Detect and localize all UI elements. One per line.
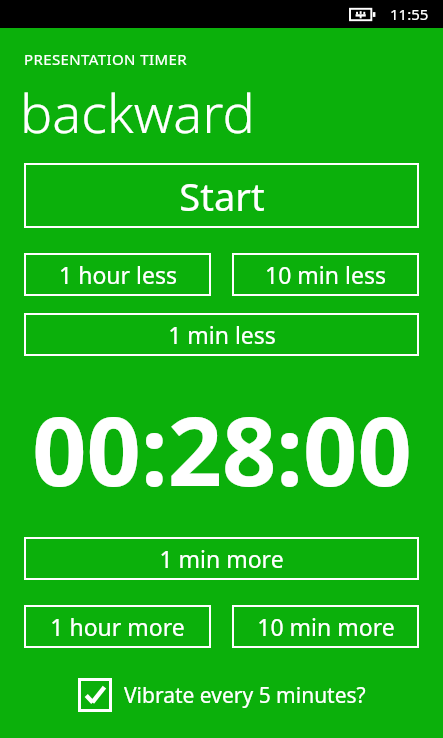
staticText: 1 hour less [59, 259, 177, 290]
button[interactable]: 10 min less [232, 253, 419, 296]
button[interactable]: Vibrate every 5 minutes? [0, 678, 443, 712]
staticText: 1 min more [159, 543, 284, 574]
staticText: Vibrate every 5 minutes? [124, 681, 366, 710]
staticText: 10 min more [257, 611, 395, 642]
staticText: PRESENTATION TIMER [24, 49, 187, 69]
staticText: 11:55 [390, 4, 429, 24]
staticText: 1 hour more [50, 611, 185, 642]
staticText: Start [179, 170, 265, 222]
staticText: 00:28:00 [32, 384, 412, 513]
button[interactable]: 1 min more [24, 537, 419, 580]
button[interactable]: Start [24, 163, 419, 228]
staticText: 1 min less [168, 319, 276, 350]
staticText: backward [20, 75, 255, 149]
button[interactable]: 1 min less [24, 313, 419, 356]
button[interactable]: 10 min more [232, 605, 419, 648]
staticText: 10 min less [265, 259, 386, 290]
button[interactable]: 1 hour more [24, 605, 211, 648]
button[interactable]: 1 hour less [24, 253, 211, 296]
